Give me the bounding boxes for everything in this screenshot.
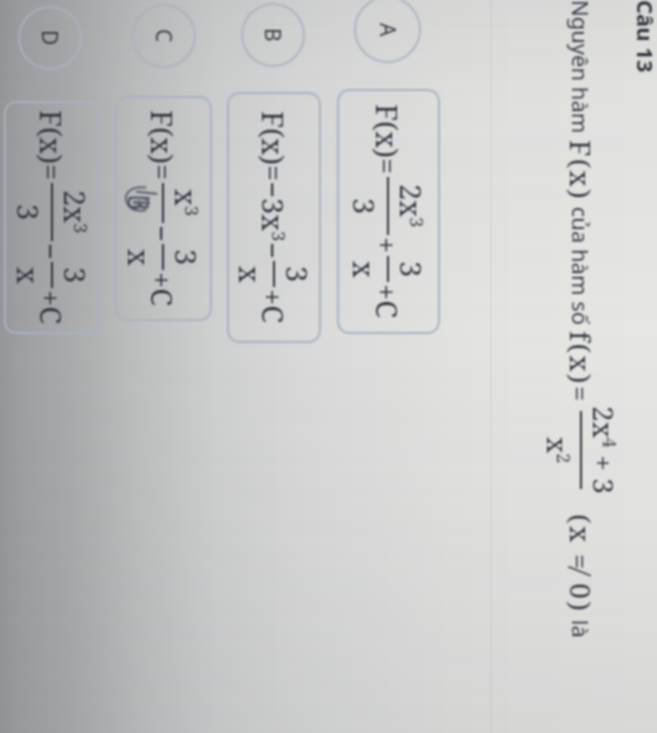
staticText: 3 [167, 249, 206, 266]
staticText: x [120, 249, 159, 266]
staticText: B [258, 28, 287, 42]
button[interactable]: D [18, 6, 82, 70]
staticText: F(x)= [368, 104, 407, 175]
staticText: F(x) [562, 140, 600, 201]
staticText: − [143, 225, 182, 242]
staticText: − [32, 243, 71, 260]
staticText: x3 [167, 189, 206, 217]
staticText: 2x3 [392, 184, 431, 228]
staticText: x [345, 261, 384, 278]
staticText: 3 [9, 204, 48, 221]
button[interactable]: F(x)= [115, 96, 212, 321]
staticText: 3 [345, 198, 384, 215]
staticText: 3 [56, 267, 95, 284]
staticText: x [231, 266, 270, 283]
staticText: x [9, 267, 48, 284]
staticText: + 3 [585, 448, 623, 494]
staticText: C [149, 29, 178, 43]
button[interactable]: B [241, 3, 305, 67]
staticText: f(x)= [562, 331, 600, 404]
staticText: + [368, 237, 407, 254]
staticText: +C [143, 272, 182, 307]
button[interactable]: F(x)= [4, 101, 100, 334]
staticText: F(x)= [32, 110, 71, 181]
staticText: +C [32, 290, 71, 325]
staticText: +C [254, 289, 293, 324]
staticText: x2 [539, 437, 577, 464]
staticText: 3 [278, 266, 317, 283]
staticText: 3 [392, 261, 431, 278]
staticText: A [373, 23, 402, 37]
staticText: Câu 13 [631, 0, 657, 73]
staticText: của hàm số [566, 201, 596, 331]
staticText: +C [368, 284, 407, 319]
button[interactable]: C [132, 4, 196, 68]
staticText: 3 [120, 195, 159, 212]
staticText: (x ≠ 0) [562, 514, 600, 614]
button[interactable]: F(x)= [337, 89, 440, 334]
staticText: D [35, 30, 64, 46]
staticText: F(x)=−3x3 [254, 111, 293, 242]
staticText: F(x)= [143, 110, 182, 181]
button[interactable]: A [354, 0, 421, 63]
staticText: 2x3 [56, 190, 95, 234]
staticText: là [566, 614, 596, 638]
button[interactable]: F(x)=−3x3 [227, 92, 321, 343]
other: Pointer [125, 186, 157, 212]
staticText: − [254, 242, 293, 259]
staticText: 2x4 [585, 406, 623, 448]
staticText: Nguyên hàm [566, 0, 596, 140]
